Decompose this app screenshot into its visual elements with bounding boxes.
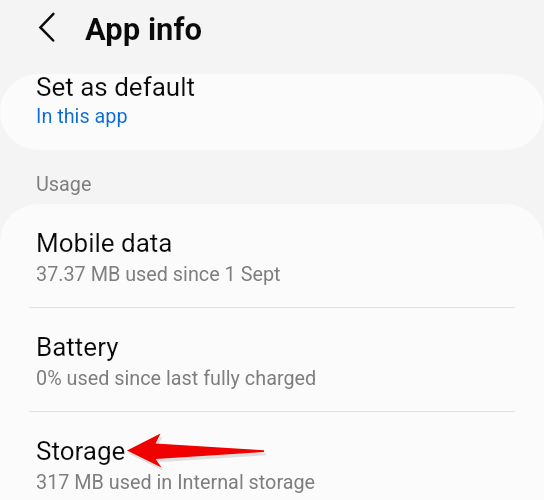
button[interactable]: Set as default [0,74,544,150]
button[interactable]: Battery [0,308,544,411]
staticText: Mobile data [36,228,173,258]
staticText: In this app [36,105,128,128]
staticText: Usage [36,173,92,196]
staticText: 37.37 MB used since 1 Sept [36,263,281,286]
staticText: App info [85,11,203,47]
staticText: Set as default [36,74,195,102]
button[interactable]: Storage [0,412,544,500]
button[interactable]: Navigate up [28,5,68,45]
button[interactable]: Mobile data [0,204,544,307]
staticText: Battery [36,332,119,362]
staticText: 317 MB used in Internal storage [36,471,316,494]
staticText: 0% used since last fully charged [36,367,317,390]
staticText: Storage [36,436,126,466]
